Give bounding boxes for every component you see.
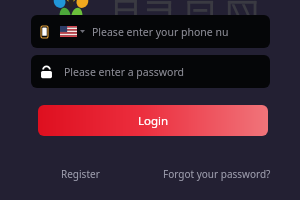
button[interactable]: Please enter a password bbox=[31, 55, 270, 88]
staticText: Please enter a password bbox=[64, 65, 184, 79]
staticText: Register bbox=[61, 167, 100, 181]
button[interactable]: Login bbox=[38, 105, 268, 136]
button[interactable]: Register bbox=[57, 165, 104, 183]
staticText: Login bbox=[138, 113, 169, 129]
staticText: Please enter your phone nu bbox=[92, 25, 229, 39]
button[interactable]: Please enter your phone number bbox=[31, 15, 270, 48]
button[interactable]: Forgot your password? bbox=[159, 165, 275, 183]
button[interactable]: Select country code bbox=[60, 26, 85, 37]
staticText: Forgot your password? bbox=[163, 167, 271, 181]
